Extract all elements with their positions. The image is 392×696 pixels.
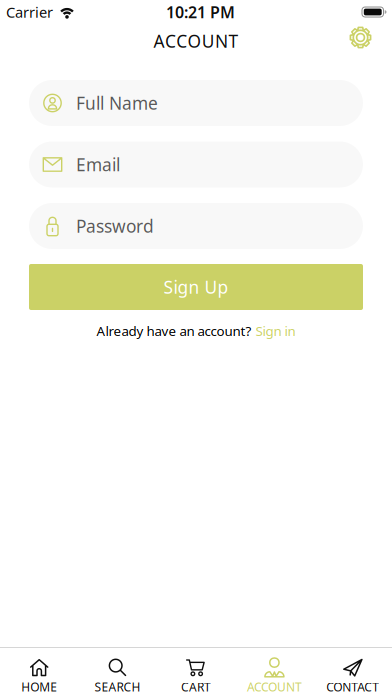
staticText: Full Name xyxy=(76,91,158,114)
staticText: Password xyxy=(76,214,154,237)
staticText: Sign Up xyxy=(163,275,228,298)
button[interactable]: HOME xyxy=(0,658,78,695)
staticText: SEARCH xyxy=(95,679,141,695)
staticText: ACCOUNT xyxy=(154,29,238,52)
staticText: Carrier xyxy=(6,2,53,22)
staticText: 10:21 PM xyxy=(166,1,235,23)
staticText: ACCOUNT xyxy=(247,679,302,695)
staticText: Already have an account? xyxy=(96,322,251,340)
button[interactable]: SEARCH xyxy=(78,658,157,695)
button[interactable]: ACCOUNT xyxy=(235,658,314,695)
button[interactable]: CART xyxy=(157,658,235,695)
staticText: HOME xyxy=(21,679,57,695)
button[interactable]: Full Name xyxy=(29,80,363,126)
button[interactable]: CONTACT xyxy=(314,658,392,695)
button[interactable]: Sign Up xyxy=(29,264,363,310)
button[interactable]: Settings xyxy=(350,26,392,55)
staticText: Sign in xyxy=(255,322,295,340)
staticText: Email xyxy=(76,153,120,176)
button[interactable]: Email xyxy=(29,141,363,187)
button[interactable]: Already have an account? xyxy=(96,322,295,340)
staticText: CART xyxy=(181,679,211,695)
staticText: CONTACT xyxy=(326,679,379,695)
button[interactable]: Password xyxy=(29,203,363,249)
